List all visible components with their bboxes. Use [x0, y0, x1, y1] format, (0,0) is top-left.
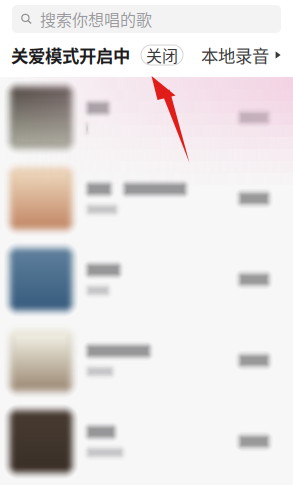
button[interactable] — [0, 158, 293, 239]
staticText: 关闭 — [146, 43, 178, 67]
button[interactable] — [0, 77, 293, 158]
button[interactable] — [0, 320, 293, 401]
button[interactable]: 搜索你想唱的歌 — [12, 5, 281, 33]
staticText: 本地录音 — [201, 42, 269, 68]
button[interactable] — [0, 239, 293, 320]
button[interactable]: 本地录音 — [201, 42, 282, 68]
button[interactable]: 关闭 — [141, 45, 183, 65]
staticText: 搜索你想唱的歌 — [40, 7, 152, 31]
staticText: 关爱模式开启中 — [11, 42, 130, 68]
button[interactable] — [0, 401, 293, 482]
